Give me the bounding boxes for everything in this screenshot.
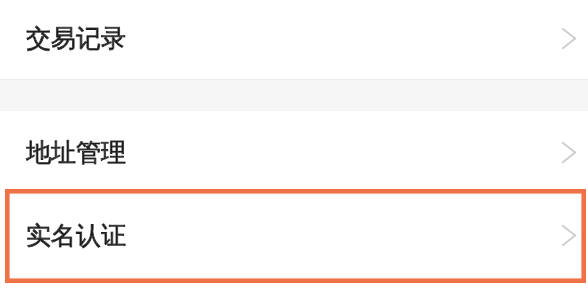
button[interactable]: 地址管理	[0, 111, 588, 189]
staticText: 地址管理	[26, 137, 126, 168]
button[interactable]: 实名认证	[0, 189, 588, 283]
button[interactable]: 交易记录	[0, 0, 588, 79]
staticText: 交易记录	[26, 23, 126, 54]
staticText: 实名认证	[26, 220, 126, 251]
